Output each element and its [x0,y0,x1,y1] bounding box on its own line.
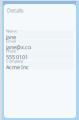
staticText: Email [6,38,16,44]
staticText: Details [7,7,24,14]
staticText: Jane [6,34,16,41]
staticText: Company [6,58,23,64]
staticText: Acme Inc [6,64,29,71]
staticText: jane@x.co [6,44,31,51]
staticText: Phone [6,48,16,54]
staticText: Name [6,28,17,34]
staticText: 555 0101 [6,54,28,61]
